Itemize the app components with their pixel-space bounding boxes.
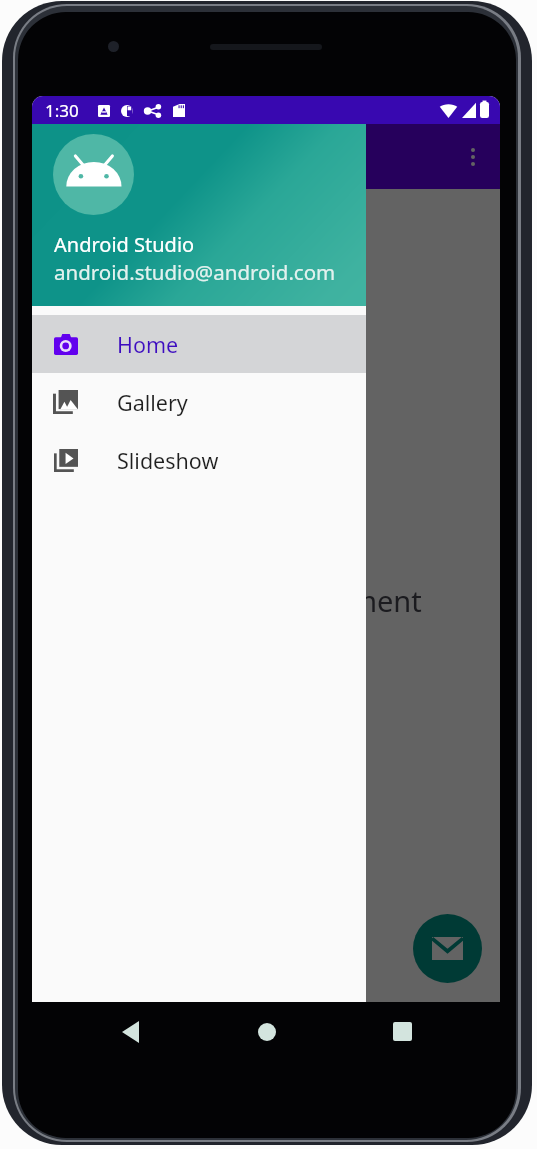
- staticText: 1:30: [45, 99, 79, 122]
- staticText: Slideshow: [117, 446, 219, 475]
- button[interactable]: Recent apps: [386, 1015, 418, 1047]
- staticText: android.studio@android.com: [54, 258, 336, 286]
- button[interactable]: Slideshow: [32, 431, 366, 489]
- button[interactable]: More options: [453, 137, 493, 177]
- button[interactable]: Send email: [413, 914, 482, 983]
- button[interactable]: Gallery: [32, 373, 366, 431]
- staticText: Home: [117, 330, 179, 359]
- button[interactable]: Home: [32, 315, 366, 373]
- button[interactable]: Home: [251, 1016, 283, 1048]
- staticText: Gallery: [117, 388, 188, 417]
- staticText: Android Studio: [54, 231, 195, 258]
- staticText: AndroidStudioDemo: [104, 142, 309, 171]
- staticText: This is home Fragment: [111, 581, 422, 620]
- button[interactable]: Back: [114, 1016, 146, 1048]
